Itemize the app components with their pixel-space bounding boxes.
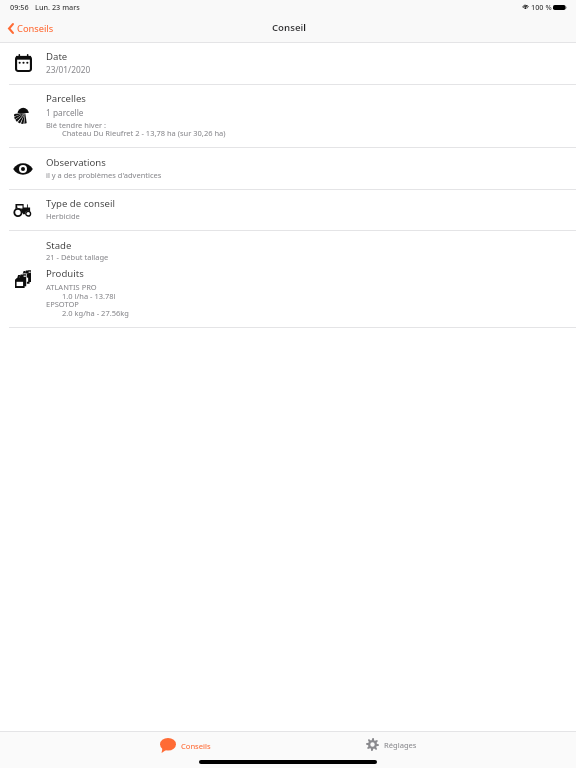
- button[interactable]: Date: [0, 43, 576, 85]
- staticText: EPSOTOP: [46, 299, 79, 309]
- button[interactable]: Conseils: [157, 735, 214, 756]
- staticText: Conseil: [272, 21, 306, 34]
- staticText: 21 - Début tallage: [46, 252, 109, 262]
- staticText: Date: [46, 50, 68, 63]
- staticText: 23/01/2020: [46, 64, 91, 75]
- staticText: ATLANTIS PRO: [46, 282, 97, 292]
- staticText: 2.0 kg/ha - 27.56kg: [62, 308, 129, 318]
- button[interactable]: Observations: [0, 148, 576, 190]
- staticText: il y a des problèmes d'adventices: [46, 170, 162, 180]
- staticText: Type de conseil: [46, 197, 115, 210]
- staticText: Parcelles: [46, 92, 86, 105]
- button[interactable]: Réglages: [363, 735, 420, 754]
- staticText: 1 parcelle: [46, 107, 84, 118]
- staticText: Blé tendre hiver :: [46, 120, 106, 130]
- button[interactable]: Type de conseil: [0, 190, 576, 231]
- staticText: Chateau Du Rieufret 2 - 13,78 ha (sur 30…: [62, 128, 226, 138]
- staticText: 09:56: [10, 2, 29, 12]
- button[interactable]: Conseils: [4, 18, 60, 39]
- staticText: Observations: [46, 156, 106, 169]
- button[interactable]: Parcelles: [0, 85, 576, 148]
- staticText: 1.0 l/ha - 13.78l: [62, 291, 116, 301]
- staticText: Lun. 23 mars: [35, 2, 80, 12]
- staticText: Conseils: [181, 741, 211, 751]
- staticText: Produits: [46, 267, 84, 280]
- staticText: Stade: [46, 239, 72, 252]
- staticText: Conseils: [17, 22, 54, 35]
- button[interactable]: Stade et produits: [0, 231, 576, 327]
- staticText: Herbicide: [46, 211, 80, 221]
- staticText: Réglages: [384, 740, 417, 750]
- staticText: 100 %: [531, 2, 552, 12]
